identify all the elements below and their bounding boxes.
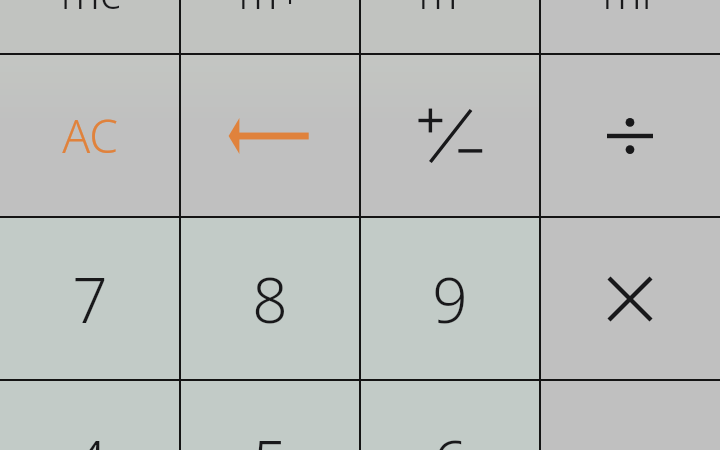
staticText: 4 bbox=[72, 420, 108, 450]
staticText: m+ bbox=[238, 0, 303, 22]
button[interactable]: Plus minus sign bbox=[360, 54, 540, 217]
button[interactable]: 7 bbox=[0, 217, 180, 380]
button[interactable]: Divide bbox=[540, 54, 720, 217]
button[interactable]: 8 bbox=[180, 217, 360, 380]
button[interactable]: 5 bbox=[180, 380, 360, 450]
button[interactable]: Subtract bbox=[540, 380, 720, 450]
staticText: AC bbox=[62, 104, 118, 167]
staticText: 7 bbox=[72, 257, 108, 341]
button[interactable]: Backspace bbox=[180, 54, 360, 217]
button[interactable]: mr bbox=[540, 0, 720, 46]
button[interactable]: m+ bbox=[180, 0, 360, 46]
button[interactable]: Multiply bbox=[540, 217, 720, 380]
staticText: 5 bbox=[252, 420, 288, 450]
button[interactable]: 4 bbox=[0, 380, 180, 450]
button[interactable]: 6 bbox=[360, 380, 540, 450]
button[interactable]: m− bbox=[360, 0, 540, 46]
staticText: 9 bbox=[432, 257, 468, 341]
staticText: m− bbox=[418, 0, 483, 22]
button[interactable]: mc bbox=[0, 0, 180, 46]
staticText: mr bbox=[602, 0, 659, 22]
staticText: 6 bbox=[432, 420, 468, 450]
staticText: 8 bbox=[252, 257, 288, 341]
button[interactable]: 9 bbox=[360, 217, 540, 380]
staticText: mc bbox=[60, 0, 121, 22]
button[interactable]: AC bbox=[0, 54, 180, 217]
